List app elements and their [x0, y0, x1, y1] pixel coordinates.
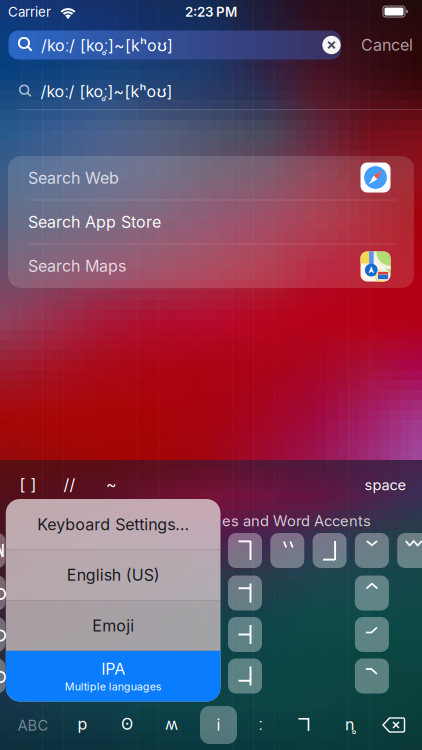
staticText: 2:23 PM: [185, 4, 237, 20]
button[interactable]: Clear search text: [322, 36, 341, 54]
staticText: Carrier: [8, 4, 51, 20]
staticText: [ ]: [19, 475, 36, 494]
button[interactable]: p: [64, 709, 100, 739]
button[interactable]: IPA: [6, 651, 220, 701]
button[interactable]: high tone: [228, 533, 262, 568]
button[interactable]: ʍ: [153, 709, 189, 739]
button[interactable]: Keyboard Settings…: [6, 499, 220, 549]
staticText: Search Web: [28, 169, 119, 187]
button[interactable]: double caron: [397, 533, 422, 568]
staticText: p: [77, 715, 87, 733]
staticText: ABC: [17, 717, 48, 734]
button[interactable]: low tone: [313, 533, 347, 568]
button[interactable]: Delete: [382, 717, 406, 733]
button[interactable]: [ ]: [8, 471, 48, 497]
staticText: ː: [258, 715, 262, 733]
button[interactable]: ʘ: [109, 709, 145, 739]
button[interactable]: circumflex: [355, 575, 389, 610]
button[interactable]: half-low tone: [228, 658, 262, 693]
button[interactable]: Tones and word accents: [290, 709, 320, 739]
button[interactable]: Emoji: [6, 601, 220, 651]
staticText: i: [216, 716, 220, 734]
staticText: Cancel: [361, 36, 413, 54]
button[interactable]: caron: [355, 533, 389, 568]
staticText: ~: [106, 475, 117, 494]
staticText: es and Word Accents: [222, 512, 371, 530]
button[interactable]: falling accent: [355, 658, 389, 693]
button[interactable]: double grave accent: [270, 533, 304, 568]
button[interactable]: n̥: [331, 709, 367, 739]
button[interactable]: Search Maps: [8, 244, 414, 288]
staticText: //: [63, 475, 75, 494]
button[interactable]: Search App Store: [8, 200, 414, 244]
button[interactable]: English (US): [6, 550, 220, 600]
staticText: English (US): [67, 565, 160, 584]
button[interactable]: half-high tone: [228, 575, 262, 610]
staticText: Search Maps: [28, 257, 126, 275]
staticText: Multiple languages: [65, 680, 162, 693]
staticText: space: [364, 476, 406, 494]
button[interactable]: Search field: [8, 30, 341, 59]
staticText: n̥: [345, 713, 354, 735]
staticText: ʘ: [121, 715, 133, 733]
staticText: ʍ: [165, 715, 178, 733]
staticText: Keyboard Settings…: [37, 515, 189, 534]
button[interactable]: ABC: [8, 710, 58, 740]
button[interactable]: rising accent: [355, 617, 389, 652]
button[interactable]: ~: [91, 471, 131, 497]
button[interactable]: //: [49, 471, 89, 497]
staticText: Search App Store: [28, 213, 161, 231]
staticText: /koː/ [ko̥ː]~[kʰoʊ]: [41, 34, 173, 56]
button[interactable]: Search Web: [8, 156, 414, 200]
staticText: /koː/ [ko̥ː]~[kʰoʊ]: [40, 80, 172, 102]
button[interactable]: mid tone: [228, 617, 262, 652]
button[interactable]: /koː/ [ko̥ː]~[kʰoʊ]: [0, 69, 422, 113]
button[interactable]: space: [350, 472, 420, 498]
staticText: IPA: [101, 659, 125, 678]
button[interactable]: Cancel: [347, 31, 422, 59]
staticText: Emoji: [92, 616, 134, 635]
button[interactable]: ː: [242, 709, 278, 739]
button[interactable]: i: [200, 706, 237, 744]
